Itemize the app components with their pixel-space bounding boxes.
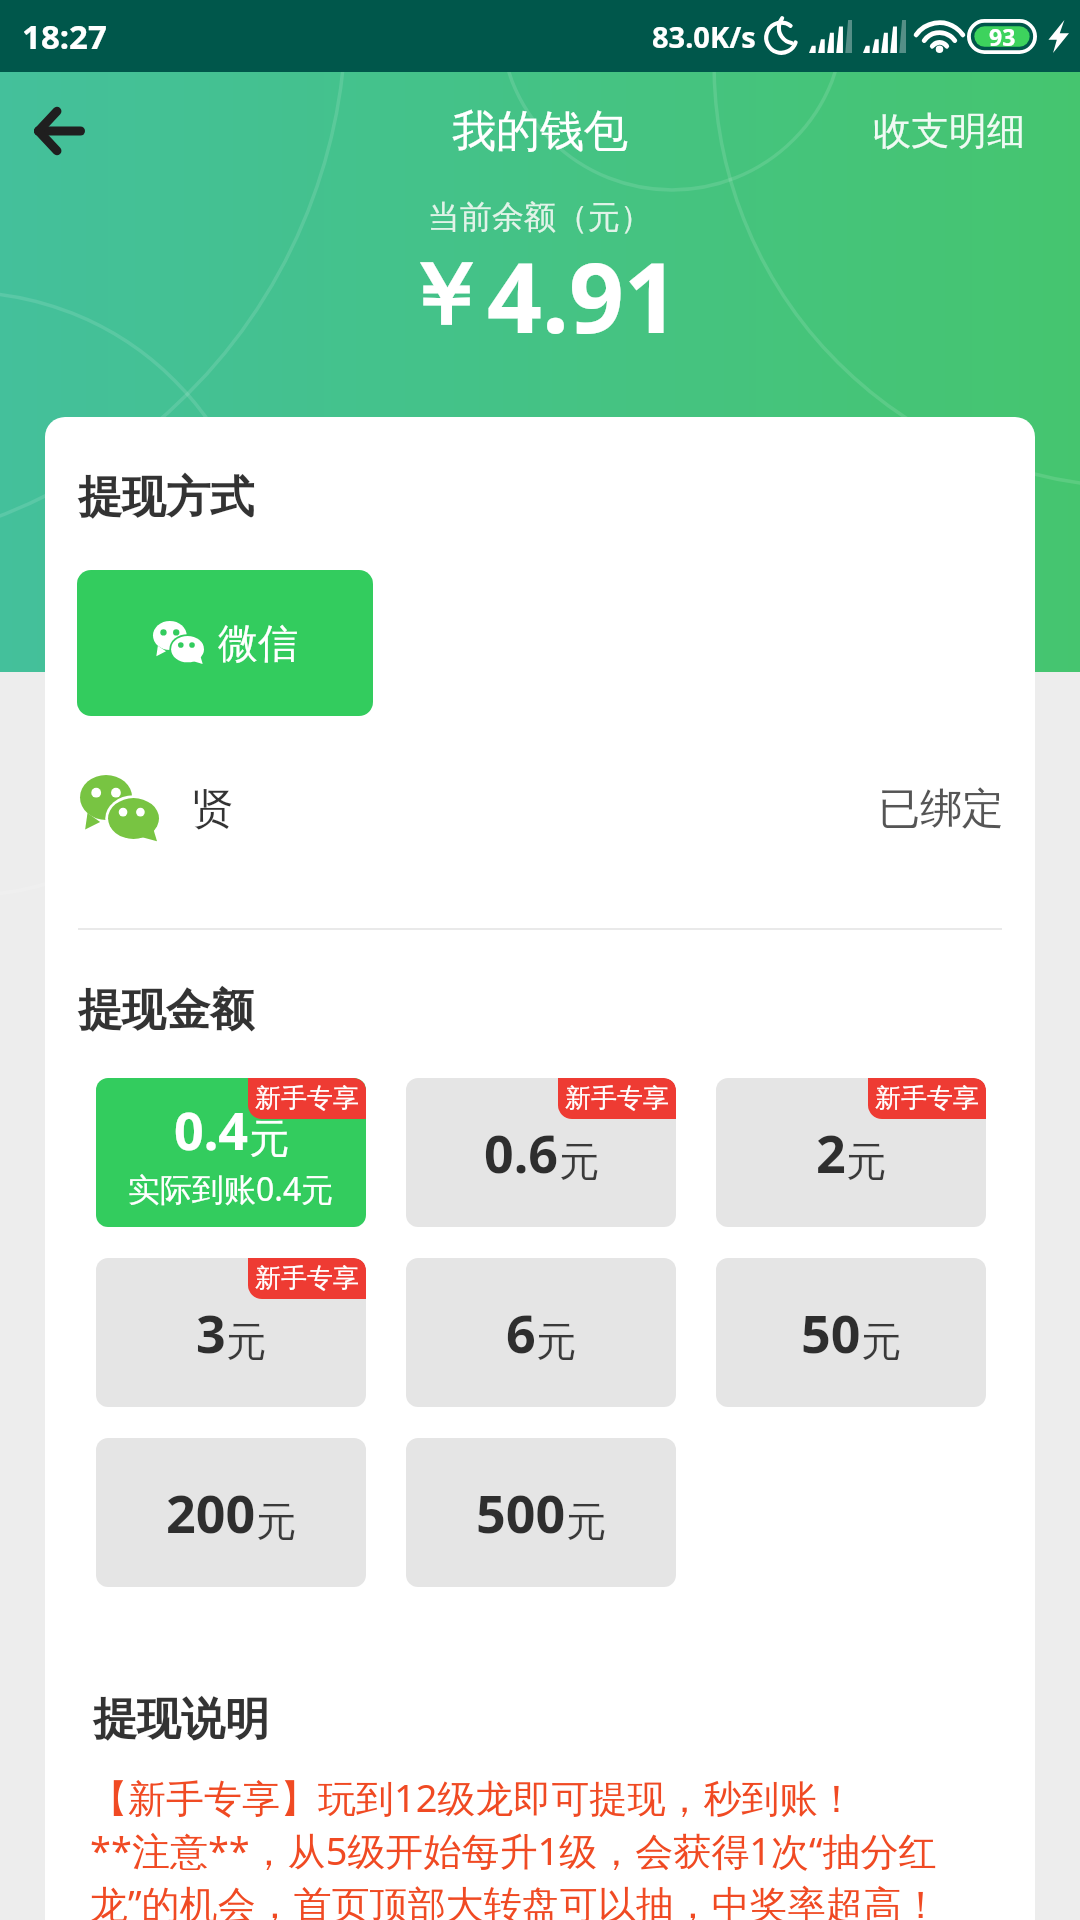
button[interactable]: 3 <box>96 1258 366 1407</box>
staticText: 83.0K/s <box>652 17 756 56</box>
staticText: ￥ <box>401 242 487 350</box>
staticText: 贤 <box>192 783 233 835</box>
button[interactable]: 200 <box>96 1438 366 1587</box>
staticText: 提现说明 <box>93 1692 269 1747</box>
staticText: 新手专享 <box>255 1262 359 1295</box>
button[interactable]: 500 <box>406 1438 676 1587</box>
staticText: 提现方式 <box>78 470 254 525</box>
staticText: 93 <box>989 21 1016 52</box>
button[interactable]: 6 <box>406 1258 676 1407</box>
button[interactable]: 微信 <box>77 570 373 716</box>
staticText: 实际到账0.4元 <box>128 1167 334 1211</box>
button[interactable]: Back <box>9 81 109 181</box>
button[interactable]: 50 <box>716 1258 986 1407</box>
staticText: 新手专享 <box>255 1082 359 1115</box>
staticText: 元 <box>861 1316 901 1366</box>
staticText: 0.6 <box>484 1117 559 1188</box>
button[interactable]: 0.6 <box>406 1078 676 1227</box>
staticText: 3 <box>196 1297 226 1368</box>
staticText: 新手专享 <box>565 1082 669 1115</box>
staticText: 收支明细 <box>873 107 1025 155</box>
staticText: 当前余额（元） <box>0 197 1080 237</box>
staticText: 提现金额 <box>78 983 254 1038</box>
staticText: 50 <box>801 1297 861 1368</box>
staticText: 元 <box>566 1496 606 1546</box>
staticText: 2 <box>816 1117 846 1188</box>
button[interactable]: 收支明细 <box>873 107 1025 155</box>
staticText: 元 <box>256 1496 296 1546</box>
staticText: 元 <box>846 1136 886 1186</box>
staticText: 0.4 <box>174 1094 249 1165</box>
staticText: 新手专享 <box>875 1082 979 1115</box>
staticText: 元 <box>249 1113 289 1163</box>
staticText: 500 <box>476 1477 566 1548</box>
staticText: 我的钱包 <box>452 104 628 159</box>
staticText: 6 <box>506 1297 536 1368</box>
staticText: 【新手专享】玩到12级龙即可提现，秒到账！ **注意**，从5级开始每升1级，会… <box>90 1771 945 1920</box>
button[interactable]: 2 <box>716 1078 986 1227</box>
staticText: 元 <box>536 1316 576 1366</box>
button[interactable]: 0.4 <box>96 1078 366 1227</box>
staticText: 200 <box>166 1477 256 1548</box>
staticText: 元 <box>559 1136 599 1186</box>
staticText: 微信 <box>218 618 298 668</box>
button[interactable]: 贤 <box>45 769 1035 849</box>
staticText: 已绑定 <box>878 783 1004 836</box>
staticText: 18:27 <box>22 14 107 59</box>
staticText: 元 <box>226 1316 266 1366</box>
staticText: 4.91 <box>487 230 679 361</box>
